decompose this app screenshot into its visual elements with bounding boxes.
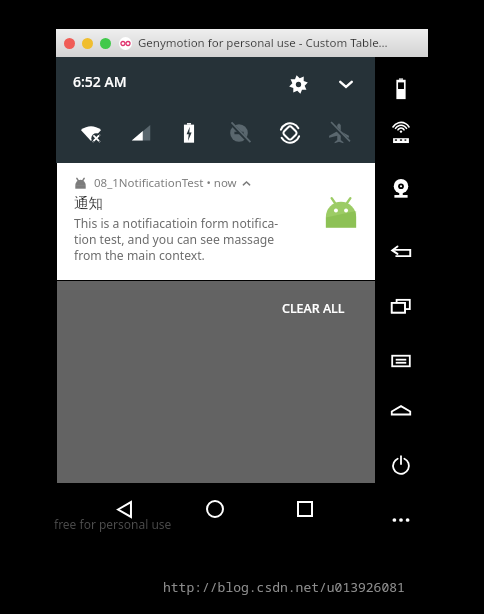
button[interactable]: Recents	[287, 491, 323, 527]
staticText: CLEAR ALL	[282, 300, 345, 317]
staticText: This is a notifiacatioin form notifica- …	[74, 215, 322, 263]
button[interactable]: Mobile signal	[122, 114, 160, 152]
button[interactable]: Airplane mode off	[320, 114, 358, 152]
button[interactable]: Home	[382, 392, 419, 429]
button[interactable]	[100, 38, 111, 49]
button[interactable]	[64, 38, 75, 49]
button[interactable]: Wi-Fi off	[72, 114, 110, 152]
staticText: Genymotion for personal use - Custom Tab…	[138, 35, 388, 51]
button[interactable]: Auto-rotate	[271, 114, 309, 152]
button[interactable]: Recents	[382, 287, 419, 324]
button[interactable]: Do not disturb off	[220, 114, 258, 152]
staticText: 通知	[74, 194, 103, 212]
button[interactable]: Power	[382, 446, 419, 483]
button[interactable]: 08_1NotificationTest • now	[57, 163, 373, 280]
button[interactable]: Battery charging	[170, 114, 208, 152]
button[interactable]: More	[382, 501, 419, 538]
button[interactable]: GPS	[382, 117, 419, 154]
button[interactable]: Back	[382, 234, 419, 271]
button[interactable]: Battery	[382, 70, 419, 107]
button[interactable]: Camera	[382, 169, 419, 206]
staticText: 6:52 AM	[73, 72, 127, 91]
staticText: free for personal use	[54, 516, 172, 532]
button[interactable]: Back	[106, 491, 142, 527]
staticText: 08_1NotificationTest • now	[94, 175, 237, 191]
button[interactable]: Settings	[280, 66, 316, 102]
button[interactable]: Menu	[382, 342, 419, 379]
button[interactable]	[82, 38, 93, 49]
button[interactable]: Expand	[328, 66, 364, 102]
button[interactable]: CLEAR ALL	[282, 300, 345, 317]
staticText: http://blog.csdn.net/u013926081	[163, 578, 405, 596]
button[interactable]: Home	[197, 491, 233, 527]
